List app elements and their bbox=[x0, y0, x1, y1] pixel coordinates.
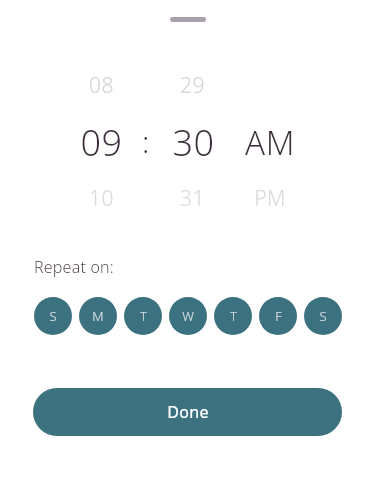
staticText: Done bbox=[167, 401, 209, 423]
staticText: M bbox=[92, 307, 104, 325]
button[interactable]: Done bbox=[33, 388, 342, 436]
button[interactable]: Drag handle bbox=[170, 17, 206, 22]
staticText: S bbox=[319, 307, 327, 325]
staticText: T bbox=[230, 307, 237, 325]
staticText: 09 bbox=[80, 118, 123, 167]
staticText: W bbox=[182, 307, 194, 325]
staticText: S bbox=[49, 307, 57, 325]
staticText: 31 bbox=[180, 184, 205, 213]
staticText: AM bbox=[245, 120, 295, 165]
staticText: Repeat on: bbox=[34, 256, 114, 278]
button[interactable]: Saturday bbox=[304, 297, 342, 335]
button[interactable]: AM PM picker bbox=[234, 62, 306, 218]
staticText: PM bbox=[254, 184, 286, 213]
staticText: 30 bbox=[172, 118, 215, 167]
button[interactable]: Hour picker bbox=[62, 62, 140, 218]
button[interactable]: Tuesday bbox=[124, 297, 162, 335]
staticText: 29 bbox=[180, 71, 205, 100]
staticText: F bbox=[275, 307, 282, 325]
staticText: T bbox=[140, 307, 147, 325]
button[interactable]: Minute picker bbox=[153, 62, 231, 218]
staticText: : bbox=[142, 121, 150, 162]
button[interactable]: Wednesday bbox=[169, 297, 207, 335]
button[interactable]: Sunday bbox=[34, 297, 72, 335]
staticText: 08 bbox=[89, 71, 114, 100]
button[interactable]: Monday bbox=[79, 297, 117, 335]
button[interactable]: Friday bbox=[259, 297, 297, 335]
button[interactable]: Thursday bbox=[214, 297, 252, 335]
staticText: 10 bbox=[89, 184, 114, 213]
